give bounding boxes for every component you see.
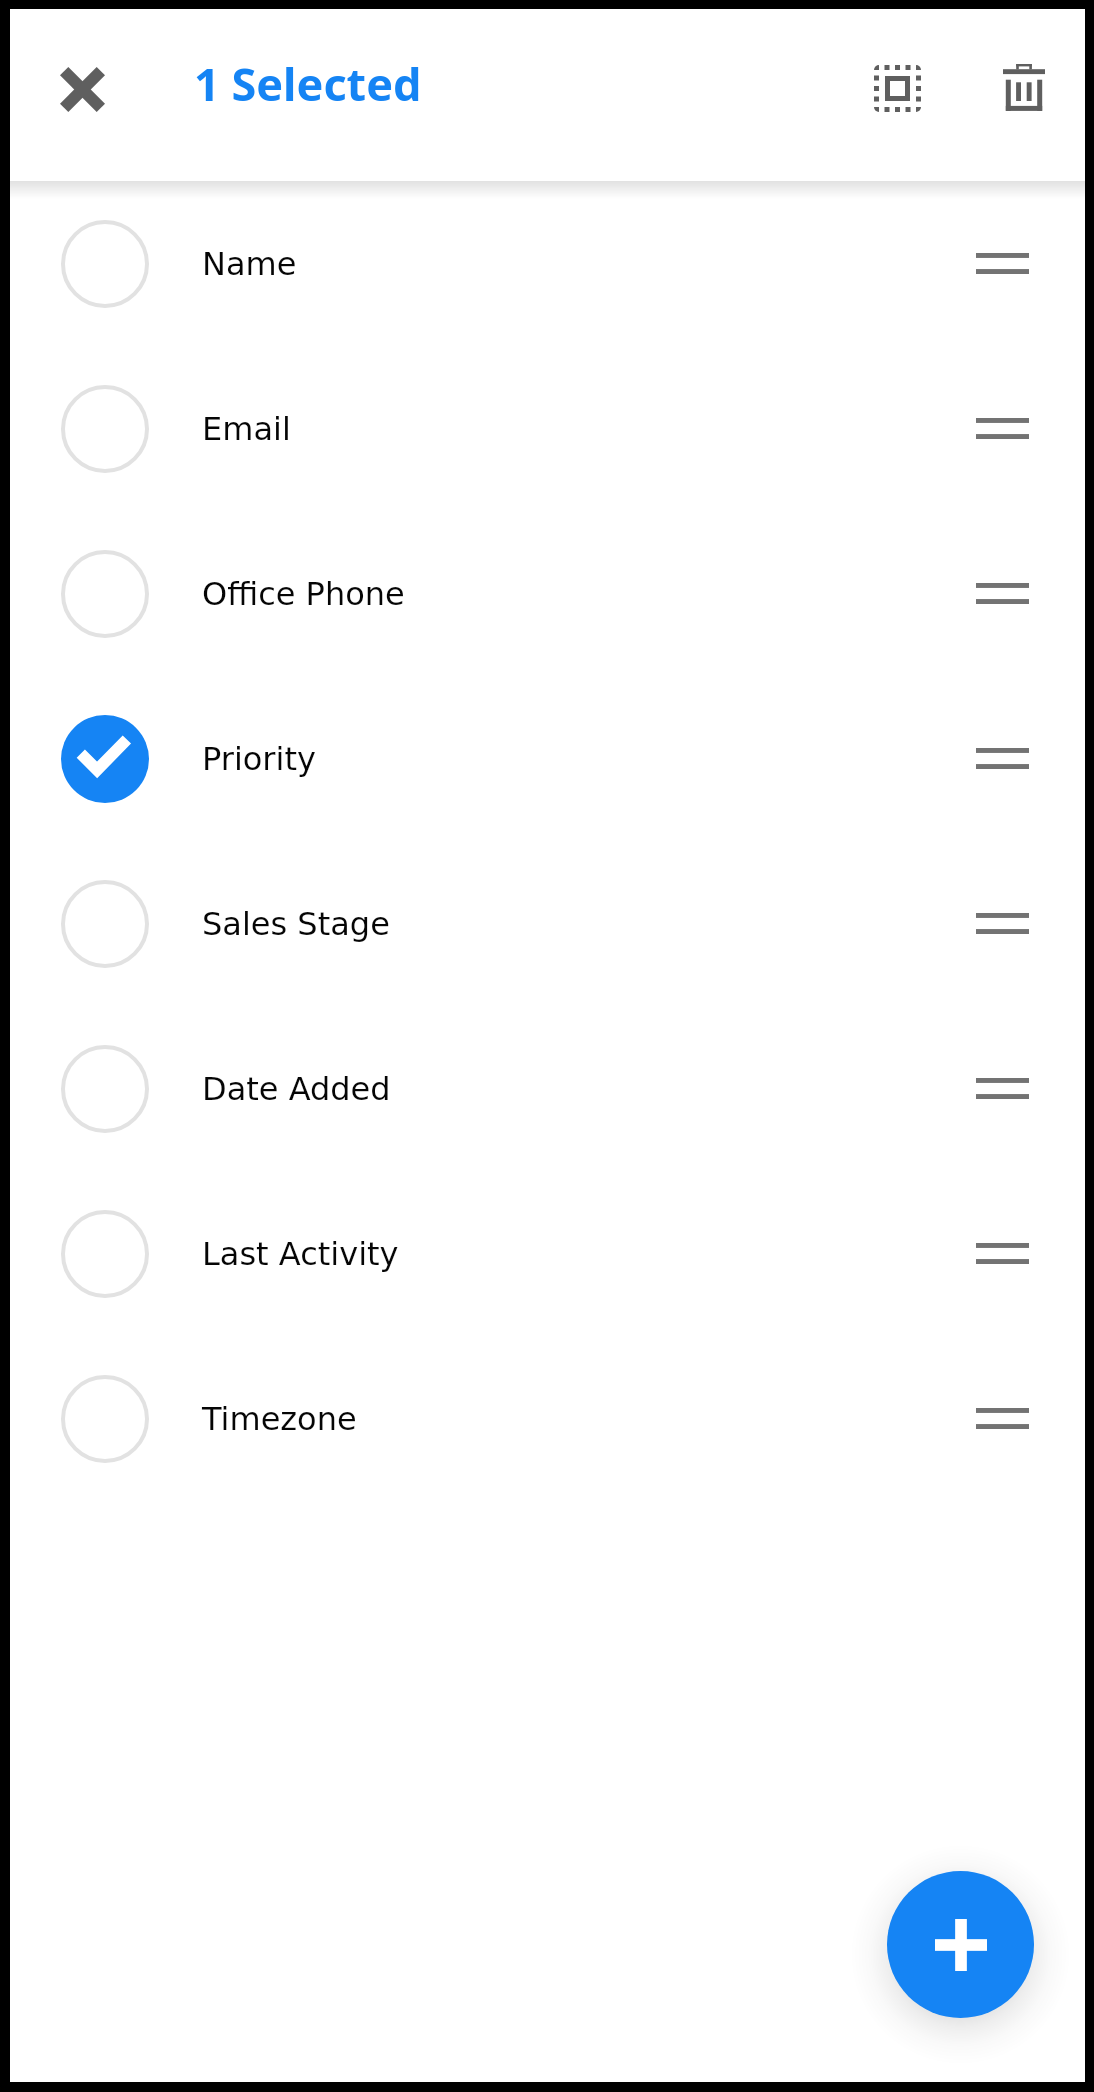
button[interactable]: Delete [980, 43, 1068, 131]
button[interactable]: Timezone [10, 1336, 1085, 1501]
button[interactable]: Last Activity [10, 1171, 1085, 1336]
button[interactable]: Office Phone [10, 511, 1085, 676]
button[interactable]: Email [10, 346, 1085, 511]
staticText: Office Phone [202, 575, 405, 612]
staticText: Name [202, 245, 297, 282]
button[interactable]: Select all [853, 44, 941, 132]
staticText: Last Activity [202, 1235, 399, 1272]
staticText: Priority [202, 740, 316, 777]
button[interactable]: Add [887, 1871, 1034, 2018]
staticText: Sales Stage [202, 905, 390, 942]
staticText: Email [202, 410, 291, 447]
button[interactable]: Close [38, 45, 126, 133]
button[interactable]: Date Added [10, 1006, 1085, 1171]
button[interactable]: Name [10, 181, 1085, 346]
staticText: Date Added [202, 1070, 391, 1107]
staticText: Timezone [202, 1400, 357, 1437]
staticText: 1 Selected [194, 53, 422, 114]
button[interactable]: Sales Stage [10, 841, 1085, 1006]
button[interactable]: Priority [10, 676, 1085, 841]
